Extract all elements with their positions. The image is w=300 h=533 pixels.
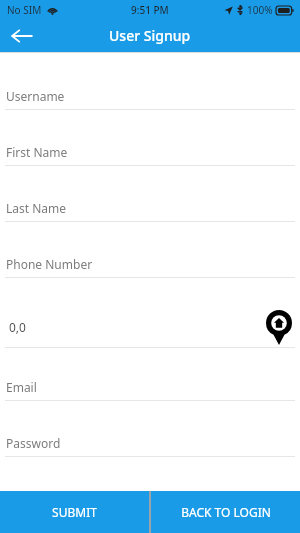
staticText: 100%	[247, 3, 273, 17]
button[interactable]: SUBMIT	[0, 491, 149, 533]
button[interactable]: Password	[0, 430, 300, 486]
button[interactable]: BACK TO LOGIN	[151, 491, 300, 533]
staticText: Confirm Password	[6, 502, 110, 518]
button[interactable]: Email	[0, 374, 300, 430]
staticText: BACK TO LOGIN	[181, 504, 271, 520]
staticText: No SIM	[7, 3, 42, 17]
button[interactable]: Back	[6, 20, 38, 52]
staticText: Phone Number	[6, 256, 93, 272]
staticText: Email	[6, 379, 37, 395]
staticText: Last Name	[6, 200, 67, 216]
button[interactable]: Username	[0, 83, 300, 139]
staticText: 9:51 PM	[131, 3, 169, 17]
staticText: User Signup	[109, 26, 191, 45]
staticText: Password	[6, 435, 61, 451]
button[interactable]: Phone Number	[0, 251, 300, 307]
button[interactable]: Last Name	[0, 195, 300, 251]
staticText: SUBMIT	[52, 504, 97, 520]
staticText: Username	[6, 88, 65, 104]
button[interactable]: Pick location	[0, 307, 300, 374]
staticText: 0,0	[9, 319, 26, 335]
button[interactable]: First Name	[0, 139, 300, 195]
staticText: First Name	[6, 144, 68, 160]
